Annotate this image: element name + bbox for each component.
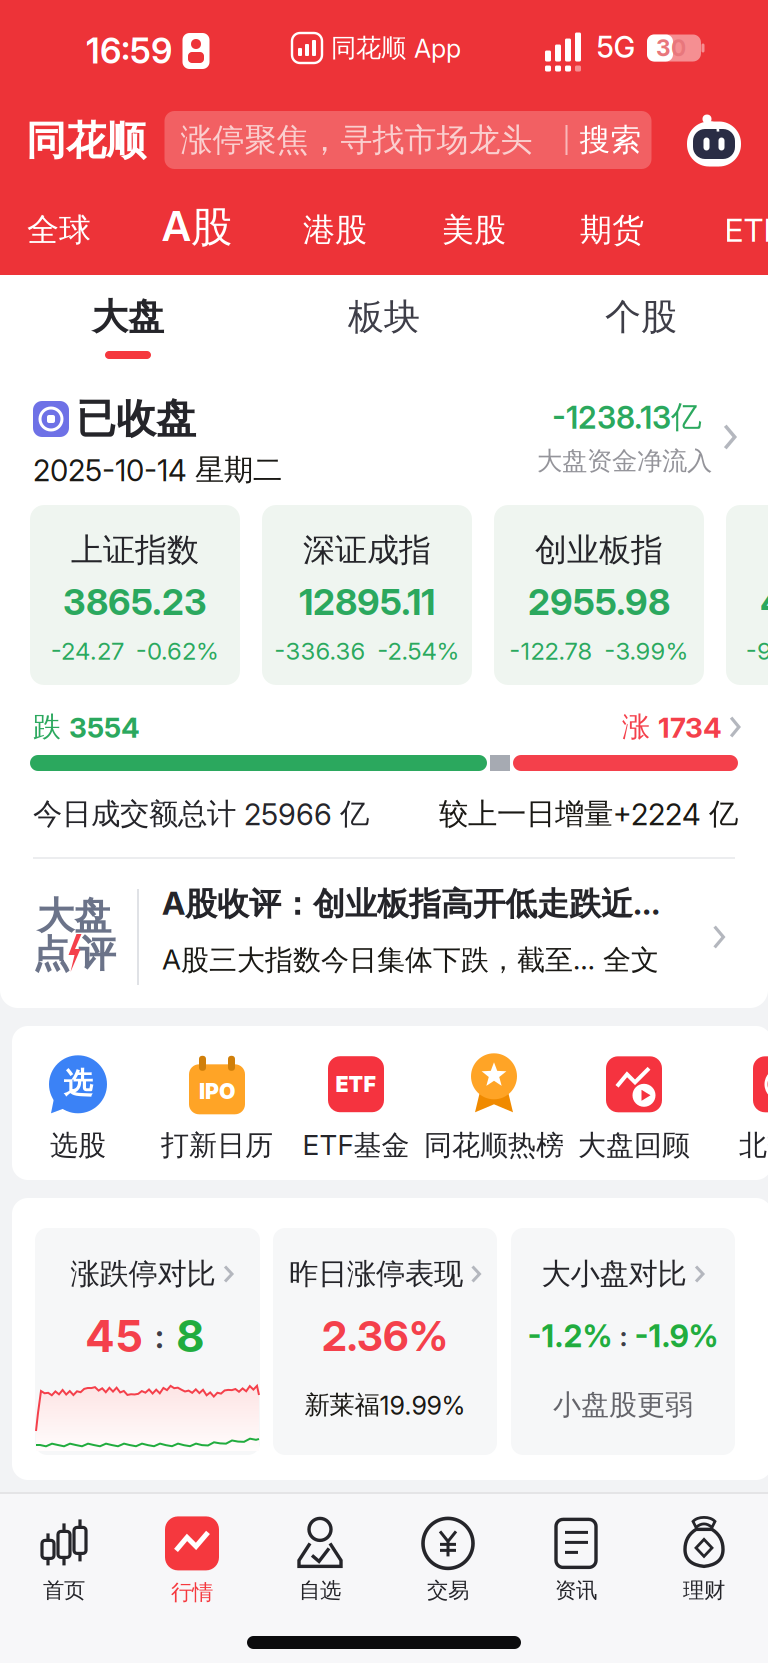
staticText: 2025-10-14 星期二: [33, 452, 282, 488]
staticText: :: [619, 1319, 627, 1352]
button[interactable]: IPO: [161, 1053, 273, 1163]
staticText: 5G: [596, 30, 635, 64]
button[interactable]: 美股: [442, 210, 506, 250]
staticText: 2955.98: [528, 581, 670, 623]
button[interactable]: 北交所: [739, 1053, 768, 1163]
staticText: 行情: [171, 1579, 213, 1606]
staticText: -336.36: [274, 637, 365, 665]
staticText: 4535.76: [760, 581, 768, 623]
staticText: 资讯: [555, 1577, 597, 1604]
button[interactable]: 昨日涨停表现: [273, 1228, 497, 1455]
staticText: 深证成指: [303, 530, 431, 570]
button[interactable]: 港股: [303, 210, 367, 250]
button[interactable]: 沪深300: [726, 505, 768, 685]
staticText: 大盘: [37, 893, 111, 939]
staticText: 大盘资金净流入: [537, 445, 712, 476]
staticText: 创业板指: [535, 530, 663, 570]
staticText: IPO: [199, 1079, 235, 1104]
staticText: 港股: [303, 210, 367, 250]
staticText: 交易: [427, 1577, 469, 1604]
staticText: -0.62%: [136, 637, 219, 665]
button[interactable]: ETF: [302, 1053, 409, 1163]
button[interactable]: 创业板指: [494, 505, 704, 685]
staticText: 12895.11: [299, 581, 435, 623]
button[interactable]: A股: [162, 201, 232, 252]
staticText: 搜索: [579, 121, 641, 159]
button[interactable]: 涨跌停对比: [35, 1228, 260, 1455]
button[interactable]: ETF: [724, 211, 768, 249]
staticText: 北交所: [739, 1128, 768, 1163]
staticText: 跌 3554: [33, 710, 140, 744]
staticText: 45: [85, 1310, 143, 1362]
button[interactable]: 大盘回顾: [578, 1053, 690, 1163]
button[interactable]: 个股: [605, 295, 677, 339]
staticText: -122.78: [509, 637, 592, 665]
staticText: 大小盘对比: [541, 1256, 686, 1292]
staticText: 选股: [50, 1128, 106, 1163]
staticText: 打新日历: [161, 1128, 273, 1163]
staticText: 首页: [43, 1577, 85, 1604]
staticText: 今日成交额总计 25966 亿: [33, 796, 369, 832]
staticText: 昨日涨停表现: [289, 1256, 463, 1292]
staticText: 同花顺 App: [331, 32, 461, 63]
staticText: 2.36%: [322, 1312, 448, 1360]
staticText: 板块: [348, 295, 420, 339]
button[interactable]: 大盘: [0, 875, 768, 999]
staticText: 涨跌停对比: [70, 1256, 215, 1292]
button[interactable]: 交易: [423, 1518, 473, 1604]
button[interactable]: 板块: [348, 295, 420, 339]
staticText: ETF基金: [302, 1128, 409, 1163]
staticText: -94.73: [746, 637, 768, 665]
staticText: 大盘: [92, 295, 164, 339]
button[interactable]: 智能助手: [684, 116, 744, 172]
staticText: 同花顺热榜: [424, 1128, 564, 1163]
staticText: 全球: [27, 210, 91, 250]
staticText: 选: [63, 1065, 92, 1101]
staticText: 点: [32, 931, 69, 977]
button[interactable]: 已收盘: [0, 275, 768, 515]
staticText: 30: [656, 35, 686, 61]
button[interactable]: 跌 3554: [0, 705, 768, 785]
staticText: 较上一日增量+2224 亿: [439, 796, 738, 832]
staticText: 涨 1734: [622, 710, 722, 744]
staticText: 大盘回顾: [578, 1128, 690, 1163]
button[interactable]: 理财: [680, 1518, 728, 1604]
staticText: 8: [176, 1310, 205, 1362]
staticText: 涨停聚焦，寻找市场龙头: [180, 120, 532, 160]
button[interactable]: 行情: [165, 1516, 219, 1606]
staticText: ETF: [724, 211, 768, 249]
button[interactable]: 涨停聚焦，寻找市场龙头: [164, 111, 651, 169]
button[interactable]: 大小盘对比: [511, 1228, 735, 1455]
staticText: A股收评：创业板指高开低走跌近…: [162, 884, 660, 924]
button[interactable]: 自选: [297, 1518, 343, 1604]
staticText: 新莱福19.99%: [304, 1389, 465, 1420]
button[interactable]: 大盘: [92, 295, 164, 339]
button[interactable]: 资讯: [553, 1518, 599, 1604]
button[interactable]: 首页: [42, 1518, 86, 1604]
button[interactable]: 同花顺热榜: [424, 1053, 564, 1163]
staticText: -2.54%: [377, 637, 459, 665]
staticText: -3.99%: [604, 637, 688, 665]
staticText: -1238.13亿: [552, 398, 702, 436]
staticText: 3865.23: [63, 581, 207, 623]
staticText: 小盘股更弱: [553, 1388, 693, 1422]
staticText: A股三大指数今日集体下跌，截至… 全文: [162, 943, 659, 977]
staticText: 上证指数: [71, 530, 199, 570]
staticText: -1.2%: [527, 1318, 612, 1354]
staticText: 16:59: [86, 31, 172, 71]
staticText: 同花顺: [26, 116, 146, 165]
staticText: A股: [162, 201, 232, 252]
staticText: -24.27: [51, 637, 124, 665]
button[interactable]: 深证成指: [262, 505, 472, 685]
staticText: 期货: [580, 210, 644, 250]
staticText: 评: [78, 931, 115, 977]
button[interactable]: 选: [47, 1053, 109, 1163]
staticText: 自选: [299, 1577, 341, 1604]
button[interactable]: 全球: [27, 210, 91, 250]
staticText: :: [155, 1316, 164, 1356]
staticText: 个股: [605, 295, 677, 339]
staticText: ETF: [335, 1072, 376, 1097]
button[interactable]: 上证指数: [30, 505, 240, 685]
staticText: -1.9%: [634, 1318, 718, 1354]
button[interactable]: 期货: [580, 210, 644, 250]
